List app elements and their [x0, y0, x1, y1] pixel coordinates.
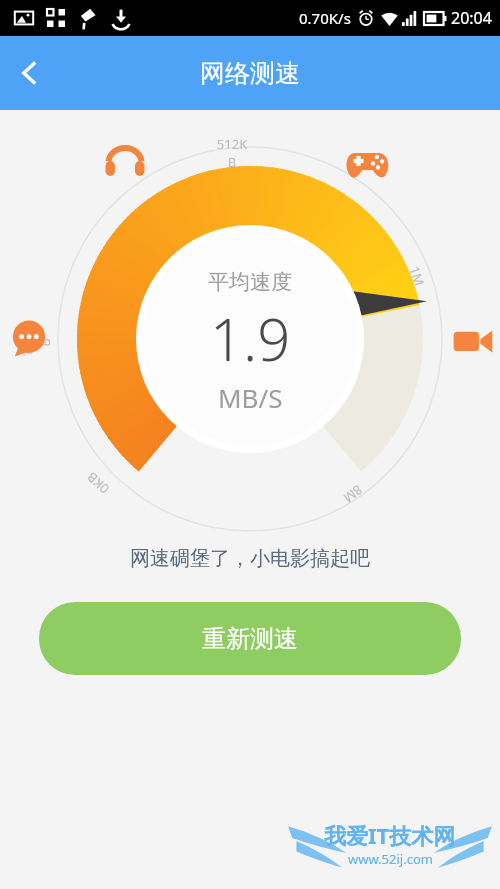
button[interactable]: Back: [0, 43, 60, 103]
button[interactable]: Music: [100, 139, 150, 189]
staticText: 128KB: [17, 323, 55, 361]
staticText: 1.9: [210, 299, 291, 378]
button[interactable]: 重新测速: [39, 602, 461, 675]
staticText: 网速碉堡了，小电影搞起吧: [0, 546, 500, 571]
button[interactable]: Video: [450, 318, 496, 364]
staticText: 20:04: [451, 7, 492, 29]
staticText: MB/S: [218, 380, 283, 415]
staticText: 1M: [403, 256, 431, 296]
staticText: 512KB: [214, 135, 250, 171]
staticText: 0KB: [79, 464, 117, 502]
staticText: www.52ij.com: [348, 850, 433, 868]
button[interactable]: Games: [342, 139, 392, 189]
staticText: 重新测速: [202, 624, 298, 654]
staticText: 平均速度: [208, 269, 292, 295]
button[interactable]: Chat: [6, 316, 52, 362]
staticText: 网络测速: [200, 58, 300, 89]
staticText: 我爱IT技术网: [324, 820, 456, 850]
staticText: 0.70K/s: [299, 8, 351, 28]
staticText: 8M: [333, 476, 373, 512]
